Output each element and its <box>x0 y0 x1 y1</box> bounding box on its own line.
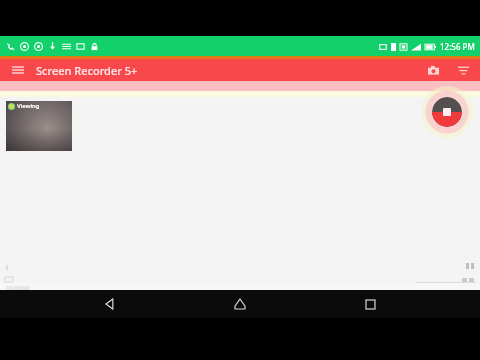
staticText: Listen to Ed Sheeran's Album <box>36 289 132 299</box>
staticText: Viewing <box>17 102 40 110</box>
button[interactable]: Recent apps <box>350 290 390 318</box>
button[interactable]: Sort <box>454 61 472 79</box>
button[interactable]: Take screenshot <box>424 61 442 79</box>
staticText: Screen Recorder 5+ <box>36 63 138 78</box>
button[interactable]: Viewing <box>6 101 72 151</box>
button[interactable]: Listen to Ed Sheeran's Album <box>0 283 480 313</box>
staticText: i <box>6 263 8 273</box>
button[interactable]: Open navigation menu <box>8 60 28 80</box>
button[interactable]: Home <box>220 290 260 318</box>
staticText: 12:56 PM <box>440 41 475 52</box>
button[interactable]: Back <box>90 290 130 318</box>
button[interactable]: Stop recording <box>432 97 462 127</box>
